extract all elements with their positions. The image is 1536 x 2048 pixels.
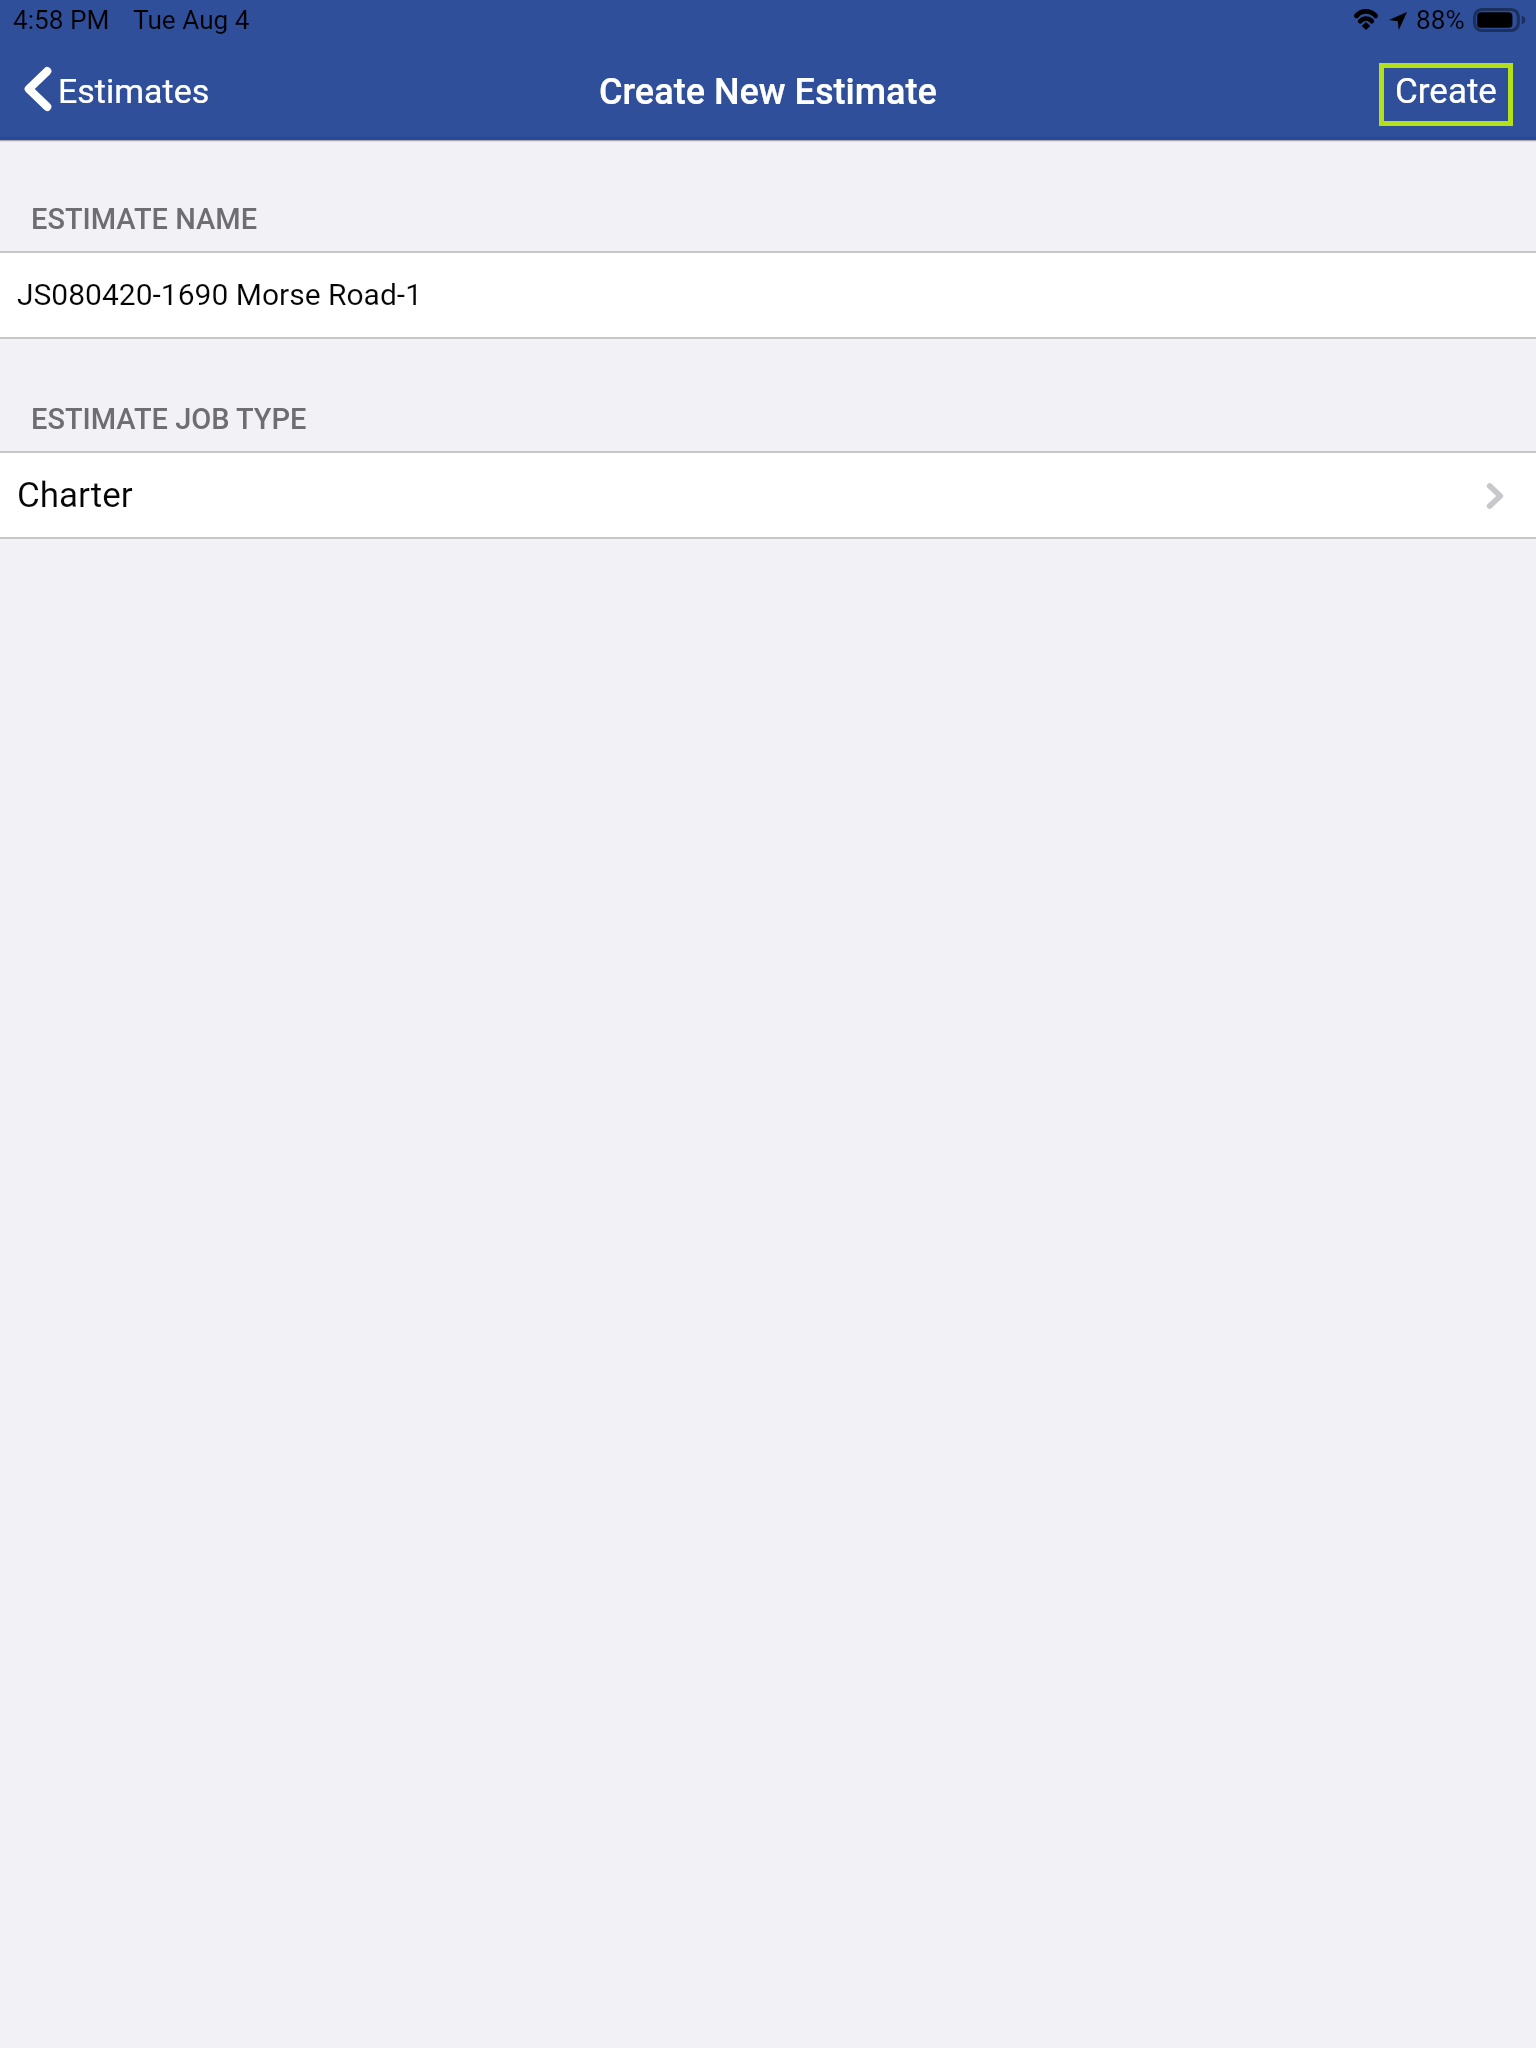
staticText: 4:58 PM [13,5,110,36]
button[interactable]: Charter [0,451,1536,539]
staticText: 88% [1416,5,1465,36]
staticText: Tue Aug 4 [133,5,250,36]
button[interactable]: JS080420-1690 Morse Road-1 [0,251,1536,339]
staticText: ESTIMATE JOB TYPE [31,402,307,436]
staticText: Create [1395,71,1497,112]
staticText: ESTIMATE NAME [31,202,258,236]
staticText: Create New Estimate [599,71,937,113]
staticText: Estimates [58,71,210,111]
button[interactable]: Back to Estimates [0,47,228,131]
other: Wi-Fi [1352,9,1380,30]
other: Location [1389,12,1407,30]
staticText: JS080420-1690 Morse Road-1 [17,277,422,312]
other: Battery 88 percent [1473,8,1526,32]
staticText: Charter [17,475,133,516]
button[interactable]: Create [1379,63,1513,126]
